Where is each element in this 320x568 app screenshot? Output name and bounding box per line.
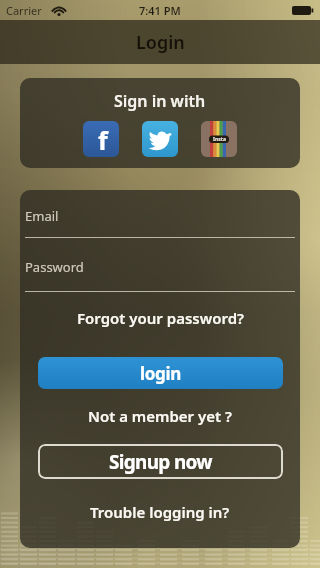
staticText: Sign in with xyxy=(114,90,206,112)
staticText: Login xyxy=(136,30,185,55)
button[interactable]: Signup now xyxy=(38,444,283,479)
staticText: Signup now xyxy=(109,449,212,475)
staticText: f xyxy=(98,123,108,157)
staticText: login xyxy=(140,362,182,385)
button[interactable]: f xyxy=(83,121,119,157)
button[interactable]: Insta xyxy=(201,121,237,157)
button[interactable]: Trouble logging in? xyxy=(90,502,230,522)
button[interactable]: login xyxy=(38,357,283,389)
button[interactable] xyxy=(142,121,178,157)
staticText: Email xyxy=(25,207,59,225)
staticText: 7:41 PM xyxy=(139,3,181,18)
staticText: Carrier xyxy=(6,3,42,18)
staticText: Trouble logging in? xyxy=(90,502,230,522)
staticText: Forgot your password? xyxy=(77,308,244,328)
button[interactable]: Not a member yet ? xyxy=(88,406,232,426)
staticText: Password xyxy=(25,258,84,276)
staticText: Insta xyxy=(213,136,226,143)
button[interactable]: Password xyxy=(20,248,300,288)
button[interactable]: Email xyxy=(20,198,300,238)
button[interactable]: Forgot your password? xyxy=(77,308,244,328)
staticText: Not a member yet ? xyxy=(88,406,232,426)
